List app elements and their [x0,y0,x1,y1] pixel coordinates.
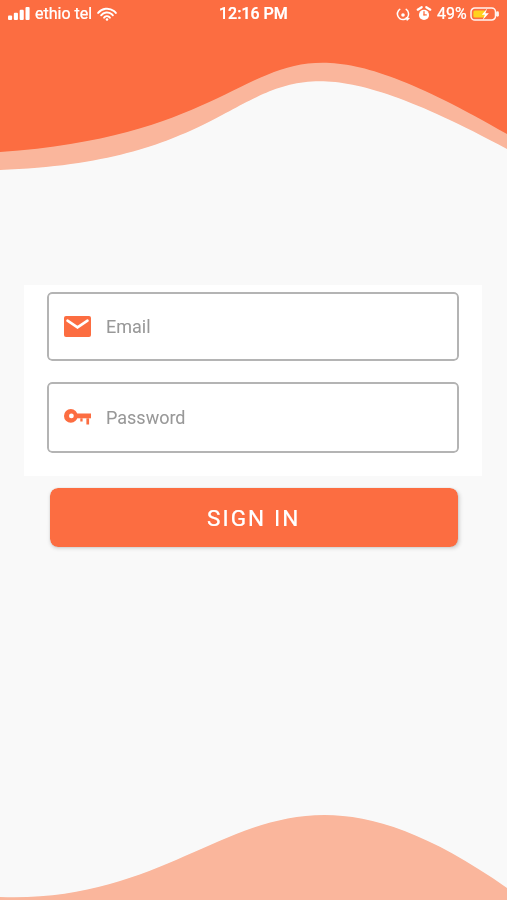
button[interactable]: Password [47,382,459,453]
staticText: ethio tel [35,4,93,23]
staticText: Email [106,316,151,337]
other: Email [64,316,91,337]
staticText: SIGN IN [207,505,301,531]
button[interactable]: Email [47,292,459,361]
staticText: 12:16 PM [219,4,288,23]
staticText: 49% [437,4,467,23]
staticText: Password [106,407,186,428]
other: Password [64,409,91,427]
button[interactable]: SIGN IN [50,488,458,547]
